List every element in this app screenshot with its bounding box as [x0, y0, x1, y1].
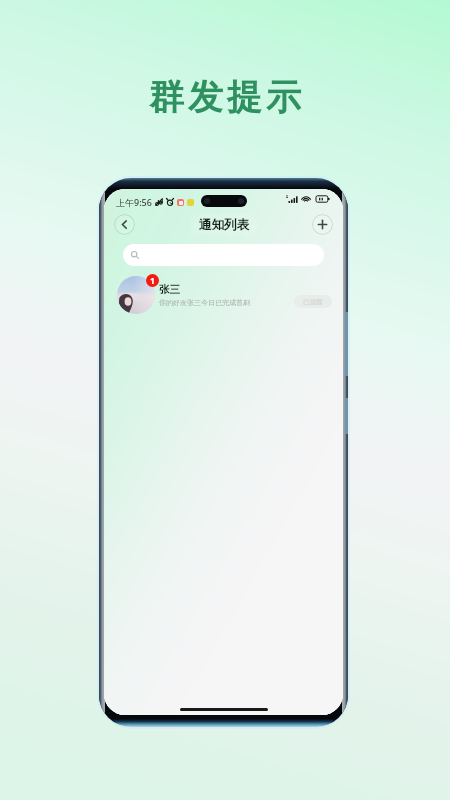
button[interactable]: 1 [104, 272, 343, 310]
staticText: 你的好友张三今日已完成首刷 [159, 298, 250, 307]
staticText: 上午9:56 [116, 196, 152, 208]
staticText: 通知列表 [199, 217, 249, 233]
button[interactable]: Add [312, 214, 333, 235]
button[interactable]: Back [114, 214, 135, 235]
staticText: 已提醒 [303, 298, 323, 306]
staticText: 张三 [159, 283, 180, 296]
button[interactable]: 通知列表 [190, 214, 258, 235]
button[interactable]: 已提醒 [294, 295, 332, 308]
staticText: 群发提示 [147, 75, 303, 119]
staticText: 1 [150, 275, 155, 287]
button[interactable] [123, 244, 324, 266]
